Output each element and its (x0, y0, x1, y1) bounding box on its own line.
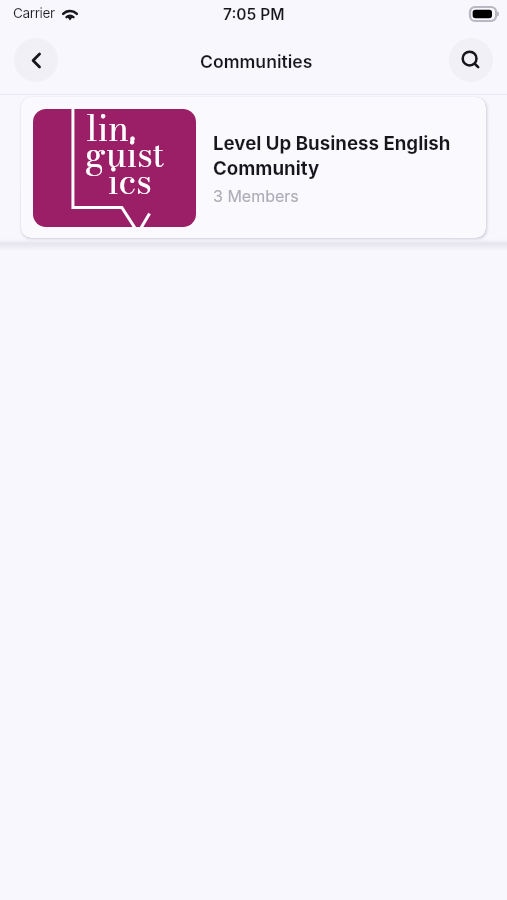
button[interactable]: Back (14, 38, 58, 82)
staticText: Carrier (13, 5, 55, 21)
staticText: Level Up Business English Community (213, 132, 451, 180)
staticText: 7:05 PM (223, 5, 285, 24)
staticText: lin. (86, 102, 137, 155)
button[interactable]: Search (449, 38, 493, 82)
staticText: Communities (200, 51, 313, 72)
staticText: ics (108, 155, 152, 208)
staticText: guist (85, 128, 165, 181)
staticText: 3 Members (213, 186, 299, 205)
button[interactable]: lin. (21, 97, 486, 238)
